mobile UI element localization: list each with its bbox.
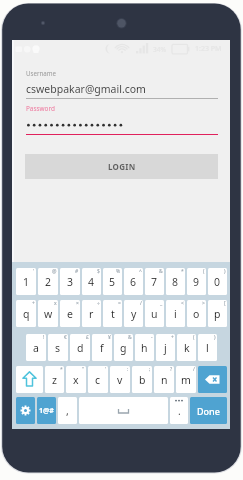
button[interactable]: i — [166, 300, 185, 327]
button[interactable]: a — [26, 334, 46, 361]
staticText: p — [214, 307, 221, 321]
staticText: _ — [160, 300, 163, 307]
button[interactable]: Done — [190, 397, 227, 424]
button[interactable]: , — [58, 397, 77, 424]
button[interactable]: b — [132, 366, 152, 393]
staticText: $ — [97, 268, 100, 275]
staticText: @ — [52, 268, 57, 275]
staticText: d — [77, 341, 84, 355]
button[interactable]: Shift — [16, 366, 43, 393]
button[interactable]: t — [103, 300, 122, 327]
staticText: r — [89, 307, 94, 321]
staticText: h — [141, 341, 148, 355]
button[interactable]: 6 — [124, 268, 143, 295]
staticText: m — [181, 373, 191, 387]
staticText: # — [75, 268, 79, 275]
staticText: 3 — [67, 275, 74, 289]
staticText: ) — [214, 334, 216, 341]
button[interactable]: n — [154, 366, 174, 393]
staticText: " — [82, 366, 85, 373]
staticText: ' — [105, 366, 107, 373]
staticText: t — [111, 307, 115, 321]
button[interactable]: 0 — [208, 268, 227, 295]
button[interactable]: x — [66, 366, 86, 393]
button[interactable]: Settings — [16, 397, 35, 424]
button[interactable]: 5 — [103, 268, 122, 295]
staticText: + — [171, 334, 174, 341]
button[interactable]: o — [187, 300, 206, 327]
staticText: ' — [33, 268, 35, 275]
staticText: > — [202, 300, 205, 307]
button[interactable]: k — [177, 334, 196, 361]
staticText: 8 — [172, 275, 179, 289]
staticText: * — [60, 366, 63, 373]
staticText: & — [159, 268, 163, 275]
button[interactable]: 2 — [38, 268, 58, 295]
staticText: = — [118, 300, 121, 307]
button[interactable]: 3 — [60, 268, 80, 295]
button[interactable]: h — [135, 334, 154, 361]
staticText: ^ — [139, 268, 142, 275]
staticText: < — [181, 300, 184, 307]
button[interactable]: 9 — [187, 268, 206, 295]
staticText: 9 — [193, 275, 200, 289]
staticText: x — [73, 373, 79, 387]
button[interactable]: l — [198, 334, 217, 361]
button[interactable]: g — [114, 334, 133, 361]
staticText: ) — [224, 268, 226, 275]
staticText: - — [151, 334, 153, 341]
staticText: c — [95, 373, 101, 387]
button[interactable]: z — [45, 366, 64, 393]
staticText: [ — [224, 300, 226, 307]
button[interactable]: e — [60, 300, 80, 327]
button[interactable]: s — [48, 334, 68, 361]
button[interactable]: LOGIN — [25, 154, 218, 179]
button[interactable]: r — [82, 300, 101, 327]
staticText: u — [151, 307, 158, 321]
staticText: ( — [193, 334, 195, 341]
button[interactable]: c — [88, 366, 108, 393]
button[interactable]: f — [92, 334, 112, 361]
staticText: w — [44, 307, 53, 321]
button[interactable]: 8 — [166, 268, 185, 295]
button[interactable]: . — [170, 397, 188, 424]
button[interactable]: 4 — [82, 268, 101, 295]
staticText: f — [100, 341, 104, 355]
staticText: j — [164, 341, 167, 355]
staticText: g — [120, 341, 127, 355]
staticText: ; — [149, 366, 151, 373]
staticText: 1 — [23, 275, 30, 289]
staticText: v — [117, 373, 123, 387]
button[interactable]: 1@# — [37, 397, 56, 424]
button[interactable]: w — [38, 300, 58, 327]
button[interactable]: Backspace — [198, 366, 227, 393]
button[interactable]: j — [156, 334, 175, 361]
button[interactable]: m — [176, 366, 196, 393]
button[interactable]: v — [110, 366, 130, 393]
staticText: cswebpakar@gmail.com — [26, 82, 146, 96]
staticText: & — [128, 334, 132, 341]
staticText: 34% — [153, 45, 166, 54]
staticText: 6 — [130, 275, 137, 289]
button[interactable]: u — [145, 300, 164, 327]
staticText: s — [55, 341, 61, 355]
staticText: n — [161, 373, 168, 387]
staticText: ( — [203, 268, 205, 275]
staticText: Done — [197, 405, 220, 417]
staticText: 4 — [88, 275, 95, 289]
button[interactable]: p — [208, 300, 227, 327]
staticText: 7 — [151, 275, 158, 289]
staticText: ? — [170, 366, 173, 373]
staticText: € — [64, 334, 67, 341]
button[interactable]: q — [16, 300, 36, 327]
button[interactable]: d — [70, 334, 90, 361]
staticText: ÷ — [97, 300, 100, 307]
staticText: 0 — [214, 275, 221, 289]
staticText: a — [33, 341, 39, 355]
staticText: ! — [43, 334, 45, 341]
button[interactable]: y — [124, 300, 143, 327]
button[interactable]: Space — [79, 397, 168, 424]
staticText: / — [193, 366, 195, 373]
button[interactable]: 1 — [16, 268, 36, 295]
button[interactable]: 7 — [145, 268, 164, 295]
